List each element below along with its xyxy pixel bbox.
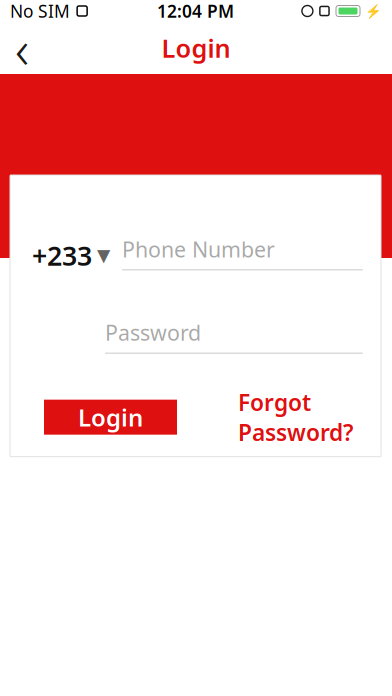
staticText: +233 xyxy=(32,238,92,273)
button[interactable]: +233 xyxy=(32,240,110,270)
staticText: ⚡ xyxy=(365,3,382,19)
staticText: Forgot Password? xyxy=(238,387,353,447)
staticText: Login xyxy=(78,401,143,433)
staticText: Phone Number xyxy=(122,235,275,263)
staticText: Login xyxy=(161,31,230,65)
staticText: 12:04 PM xyxy=(157,0,234,22)
staticText: ▼ xyxy=(97,245,110,265)
staticText: Password xyxy=(105,318,201,347)
button[interactable]: Forgot Password? xyxy=(238,400,353,435)
staticText: No SIM xyxy=(10,0,70,22)
staticText: ‹ xyxy=(15,13,29,83)
button[interactable]: Back xyxy=(0,26,44,70)
button[interactable]: Login xyxy=(44,400,177,435)
